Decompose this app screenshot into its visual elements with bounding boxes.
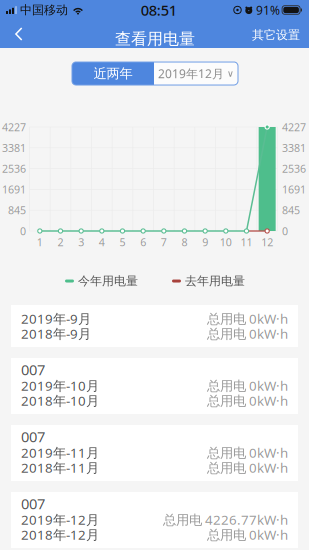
staticText: 查看用电量	[115, 29, 195, 49]
staticText: 8	[181, 235, 187, 249]
staticText: 1691	[2, 182, 26, 196]
button[interactable]: Back	[0, 20, 38, 48]
staticText: 2019年-12月	[21, 511, 99, 528]
staticText: 2	[57, 235, 63, 249]
staticText: 91%	[256, 2, 280, 18]
button[interactable]: 007	[11, 358, 298, 414]
staticText: 0	[20, 224, 26, 238]
staticText: 9	[202, 235, 208, 249]
staticText: 10	[220, 235, 232, 249]
staticText: 3	[78, 235, 84, 249]
staticText: 总用电 0kW·h	[207, 459, 288, 476]
staticText: 总用电 0kW·h	[207, 526, 288, 543]
staticText: 007	[21, 360, 45, 379]
staticText: 2018年-12月	[21, 526, 99, 543]
button[interactable]: 2019年-9月	[11, 305, 298, 347]
staticText: 3381	[282, 141, 306, 155]
staticText: 总用电 0kW·h	[207, 325, 288, 342]
staticText: 4227	[282, 120, 306, 134]
staticText: 2019年12月	[158, 65, 224, 81]
staticText: 总用电 4226.77kW·h	[163, 511, 288, 528]
staticText: 2019年-11月	[21, 444, 99, 461]
staticText: 3381	[2, 141, 26, 155]
staticText: 2018年-11月	[21, 459, 99, 476]
staticText: 1691	[282, 182, 306, 196]
staticText: 今年用电量	[78, 274, 138, 288]
staticText: 12	[261, 235, 273, 249]
staticText: 2018年-10月	[21, 392, 99, 409]
staticText: 2536	[282, 161, 306, 176]
staticText: 0	[282, 224, 288, 238]
staticText: 845	[282, 203, 300, 217]
staticText: 7	[161, 235, 167, 249]
staticText: 近两年	[93, 65, 132, 82]
staticText: 11	[240, 235, 252, 249]
staticText: 中国移动	[20, 3, 68, 17]
staticText: 6	[140, 235, 146, 249]
staticText: 2019年-10月	[21, 377, 99, 394]
staticText: 845	[8, 203, 26, 217]
staticText: 1	[37, 235, 43, 249]
button[interactable]: 2019年12月	[154, 62, 238, 85]
staticText: 去年用电量	[185, 274, 245, 288]
staticText: 007	[21, 494, 45, 513]
staticText: 5	[119, 235, 125, 249]
staticText: 08:51	[141, 0, 177, 20]
button[interactable]: 其它设置	[245, 21, 307, 49]
button[interactable]: 近两年	[72, 62, 154, 85]
staticText: 4227	[2, 120, 26, 134]
staticText: 4	[99, 235, 105, 249]
staticText: 2019年-9月	[21, 310, 91, 327]
staticText: 总用电 0kW·h	[207, 377, 288, 394]
staticText: 2536	[2, 161, 26, 176]
button[interactable]: 007	[11, 425, 298, 481]
staticText: 总用电 0kW·h	[207, 392, 288, 409]
staticText: 总用电 0kW·h	[207, 444, 288, 461]
button[interactable]: 007	[11, 492, 298, 548]
staticText: 2018年-9月	[21, 325, 91, 342]
staticText: 其它设置	[252, 28, 300, 42]
staticText: ∨	[227, 68, 234, 79]
staticText: 总用电 0kW·h	[207, 310, 288, 327]
staticText: 007	[21, 427, 45, 446]
